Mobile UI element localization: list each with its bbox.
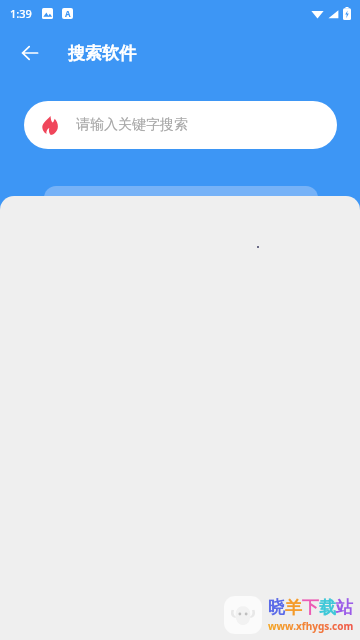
staticText: 下	[302, 597, 319, 618]
staticText: 1:39	[10, 6, 32, 21]
staticText: 站	[336, 597, 353, 618]
staticText: 晓	[268, 597, 285, 618]
button[interactable]: Back	[11, 34, 49, 72]
staticText: A	[65, 8, 71, 19]
staticText: 载	[319, 597, 336, 618]
staticText: 请输入关键字搜索	[76, 116, 188, 134]
other: Hot	[40, 115, 61, 136]
staticText: www.xfhygs.com	[268, 619, 354, 633]
staticText: 搜索软件	[68, 43, 136, 64]
button[interactable]: Hot	[24, 101, 337, 149]
staticText: 羊	[285, 597, 302, 618]
